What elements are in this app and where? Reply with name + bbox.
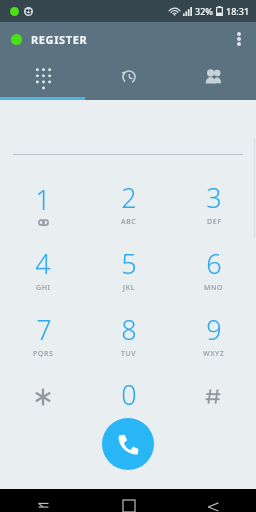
button[interactable]: More options — [222, 22, 256, 56]
staticText: 1 — [35, 181, 51, 218]
button[interactable]: 8 — [86, 302, 171, 368]
button[interactable]: Home — [86, 489, 171, 512]
staticText: 0 — [121, 376, 137, 413]
staticText: JKL — [123, 283, 135, 293]
staticText: 2 — [121, 179, 137, 216]
button[interactable]: Back — [171, 489, 256, 512]
button[interactable]: 3 — [171, 170, 256, 236]
staticText: TUV — [121, 349, 137, 359]
button[interactable] — [171, 368, 256, 434]
button[interactable]: 0 — [86, 368, 171, 434]
button[interactable]: 1 — [0, 170, 86, 236]
button[interactable]: REGISTER — [11, 32, 88, 47]
staticText: 8 — [121, 311, 137, 348]
staticText: 6 — [206, 245, 222, 282]
button[interactable] — [0, 368, 86, 434]
button[interactable]: 9 — [171, 302, 256, 368]
staticText: MNO — [204, 283, 224, 293]
staticText: 9 — [206, 311, 222, 348]
staticText: REGISTER — [31, 32, 88, 47]
staticText: GHI — [36, 283, 51, 293]
staticText: DEF — [207, 217, 222, 227]
staticText: 5 — [121, 245, 137, 282]
staticText: 32% — [195, 5, 213, 17]
button[interactable]: Recents — [0, 489, 86, 512]
staticText: + — [126, 414, 132, 426]
button[interactable]: 7 — [0, 302, 86, 368]
staticText: 4 — [35, 245, 51, 282]
button[interactable]: Call history — [86, 56, 171, 97]
button[interactable]: Contacts — [171, 56, 256, 97]
button[interactable]: 5 — [86, 236, 171, 302]
staticText: 3 — [206, 179, 222, 216]
button[interactable]: 6 — [171, 236, 256, 302]
staticText: 18:31 — [226, 5, 250, 17]
button[interactable]: Call — [102, 418, 154, 470]
staticText: ABC — [121, 217, 137, 227]
staticText: 7 — [36, 311, 52, 348]
button[interactable]: Dialpad — [0, 56, 86, 97]
button[interactable]: 4 — [0, 236, 86, 302]
staticText: PQRS — [33, 349, 54, 359]
button[interactable]: 2 — [86, 170, 171, 236]
staticText: WXYZ — [203, 349, 225, 359]
